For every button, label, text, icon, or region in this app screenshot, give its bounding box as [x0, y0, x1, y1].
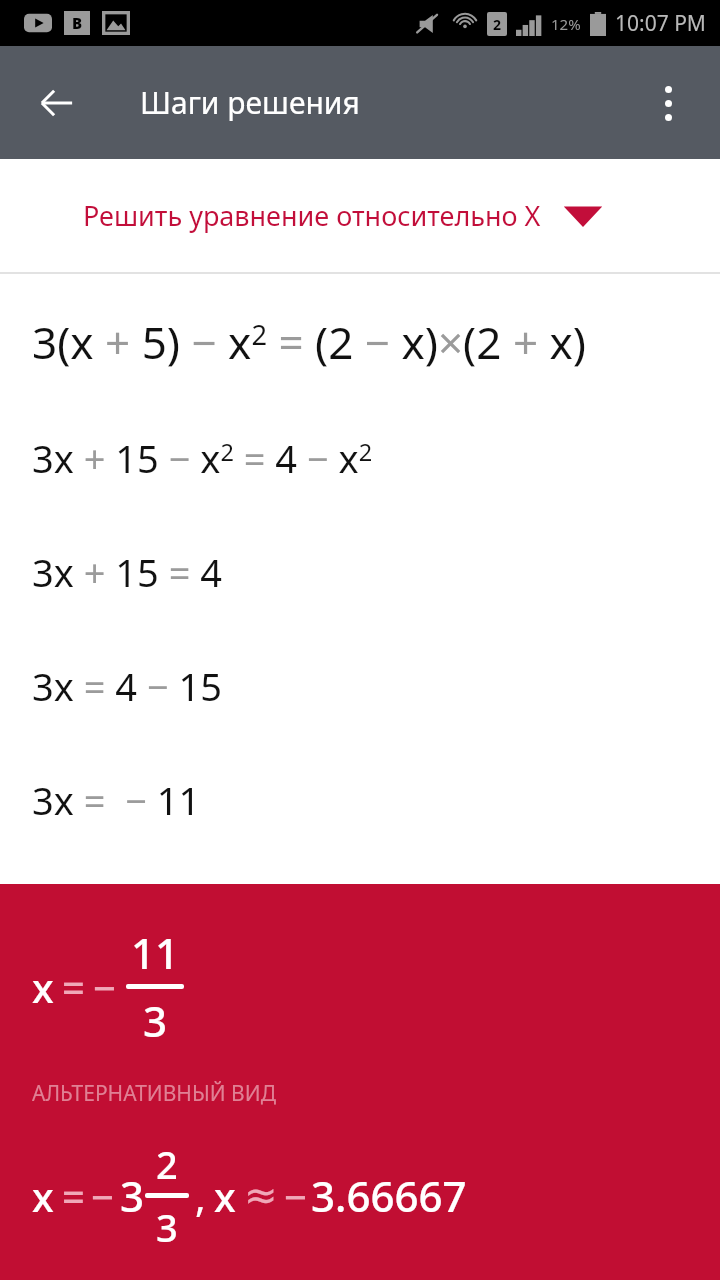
staticText: 3(x + 5) − x2 = (2 − x)×(2 + x) [32, 312, 586, 372]
staticText: Решить уравнение относительно X [83, 197, 541, 234]
staticText: 3 [156, 1201, 178, 1253]
staticText: 3x + 15 − x2 = 4 − x2 [32, 432, 373, 484]
staticText: = [62, 960, 85, 1014]
button[interactable]: Ещё [636, 71, 700, 135]
button[interactable]: Решить уравнение относительно X [0, 159, 720, 272]
button[interactable]: Назад [22, 68, 92, 138]
staticText: = [62, 1169, 85, 1223]
staticText: 10:07 PM [615, 9, 706, 38]
staticText: 2 [493, 15, 502, 34]
staticText: 12% [551, 14, 581, 34]
staticText: 3.66667 [311, 1167, 467, 1224]
staticText: 3x = 4 − 15 [32, 660, 223, 712]
staticText: x [32, 960, 54, 1014]
staticText: , [195, 1169, 206, 1223]
staticText: 3x + 15 = 4 [32, 546, 223, 598]
staticText: 2 [156, 1138, 178, 1190]
staticText: Шаги решения [140, 82, 360, 123]
staticText: 11 [131, 924, 180, 981]
staticText: АЛЬТЕРНАТИВНЫЙ ВИД [32, 1079, 276, 1108]
staticText: x [214, 1169, 236, 1223]
staticText: 3x = − 11 [32, 774, 201, 826]
staticText: − [284, 1169, 307, 1223]
staticText: 3 [143, 992, 168, 1049]
staticText: ≈ [244, 1172, 278, 1219]
staticText: B [72, 13, 83, 33]
staticText: 3 [120, 1167, 145, 1224]
staticText: − [93, 960, 116, 1014]
staticText: x [32, 1169, 54, 1223]
staticText: − [91, 1169, 114, 1223]
